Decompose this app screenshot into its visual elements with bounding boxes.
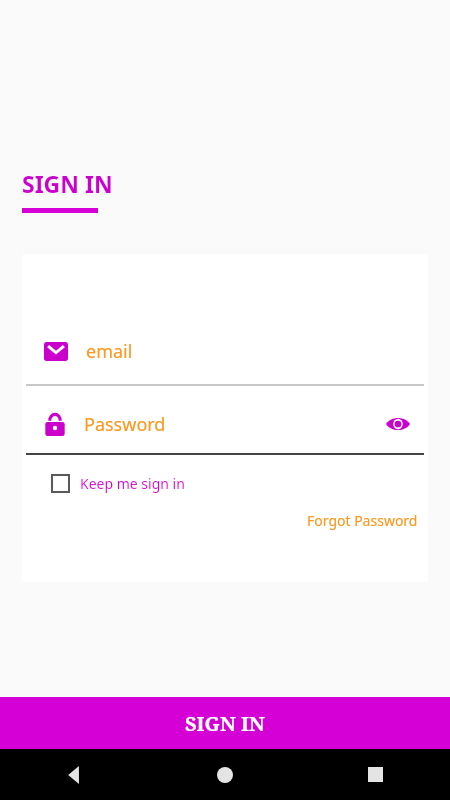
button[interactable]: Recent apps [300,749,450,800]
staticText: Forgot Password [307,511,418,530]
button[interactable]: Back [0,749,150,800]
button[interactable]: Home [150,749,300,800]
staticText: Keep me sign in [80,474,185,493]
button[interactable]: email [22,331,428,371]
staticText: SIGN IN [185,710,265,737]
button[interactable]: Password [22,404,428,444]
staticText: email [86,339,133,364]
button[interactable]: Keep me sign in [52,469,185,497]
staticText: Password [84,412,166,437]
staticText: SIGN IN [22,168,113,199]
button[interactable]: Show password [378,404,418,444]
button[interactable]: SIGN IN [0,697,450,749]
button[interactable]: Forgot Password [307,509,428,532]
